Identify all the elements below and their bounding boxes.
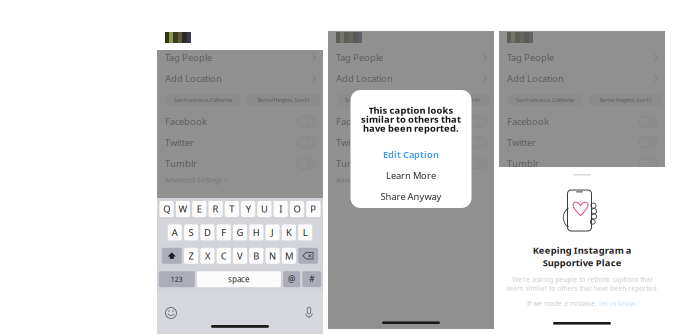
button[interactable]: Y bbox=[241, 201, 255, 217]
button[interactable]: W bbox=[176, 201, 190, 217]
button[interactable]: @ bbox=[283, 271, 300, 287]
button[interactable]: Emoji bbox=[165, 307, 177, 319]
staticText: Twitter bbox=[165, 136, 194, 149]
button[interactable]: V bbox=[233, 248, 247, 264]
button[interactable]: R bbox=[208, 201, 223, 217]
button[interactable]: X bbox=[200, 248, 214, 264]
button[interactable]: B bbox=[249, 248, 263, 264]
staticText: Edit Caption bbox=[383, 148, 439, 161]
staticText: Tumblr bbox=[507, 157, 539, 170]
button[interactable]: Add Location bbox=[499, 68, 665, 89]
button[interactable]: F bbox=[217, 224, 231, 240]
staticText: W bbox=[178, 203, 187, 215]
staticText: G bbox=[236, 226, 243, 239]
button[interactable]: C bbox=[217, 248, 231, 264]
button[interactable]: Facebook bbox=[328, 111, 494, 132]
staticText: Bernal Heights, San Fr bbox=[599, 96, 651, 104]
staticText: Twitter bbox=[507, 136, 536, 149]
staticText: O bbox=[294, 203, 301, 215]
button[interactable]: Tumblr bbox=[157, 153, 323, 174]
staticText: Keeping Instagram a Supportive Place bbox=[532, 244, 631, 269]
button[interactable]: Twitter bbox=[328, 132, 494, 153]
button[interactable]: S bbox=[184, 224, 198, 240]
button[interactable]: Edit Caption bbox=[350, 144, 471, 165]
staticText: B bbox=[253, 250, 259, 262]
staticText: Facebook bbox=[165, 115, 207, 128]
button[interactable]: Add Location bbox=[157, 68, 323, 89]
button[interactable]: Tumblr bbox=[499, 153, 665, 174]
button[interactable]: Z bbox=[184, 248, 198, 264]
staticText: We're asking people to rethink captions … bbox=[506, 275, 658, 293]
button[interactable]: H bbox=[249, 224, 263, 240]
staticText: Add Location bbox=[336, 72, 393, 85]
staticText: San Francisco, California bbox=[345, 96, 403, 104]
button[interactable]: Tag People bbox=[328, 47, 494, 68]
staticText: P bbox=[310, 203, 316, 215]
button[interactable]: O bbox=[290, 201, 304, 217]
button[interactable]: Shift bbox=[162, 248, 182, 264]
staticText: Add Location bbox=[507, 72, 564, 85]
button[interactable]: P bbox=[306, 201, 320, 217]
staticText: J bbox=[271, 226, 274, 239]
button[interactable]: San Francisco, California bbox=[337, 95, 411, 105]
staticText: Z bbox=[189, 250, 194, 262]
button[interactable]: T bbox=[225, 201, 239, 217]
staticText: H bbox=[253, 226, 260, 239]
staticText: L bbox=[303, 226, 308, 239]
staticText: > bbox=[395, 176, 398, 184]
button[interactable]: Share Anyway bbox=[350, 186, 471, 207]
button[interactable]: Tag People bbox=[157, 47, 323, 68]
button[interactable]: Tumblr bbox=[328, 153, 494, 174]
button[interactable]: E bbox=[192, 201, 206, 217]
button[interactable]: D bbox=[200, 224, 214, 240]
staticText: 123 bbox=[171, 275, 183, 284]
button[interactable]: San Francisco, California bbox=[166, 95, 240, 105]
button[interactable]: Twitter bbox=[499, 132, 665, 153]
button[interactable]: N bbox=[265, 248, 280, 264]
staticText: T bbox=[229, 203, 234, 215]
staticText: San Francisco, California bbox=[174, 96, 232, 104]
button[interactable]: K bbox=[282, 224, 296, 240]
button[interactable]: Facebook bbox=[499, 111, 665, 132]
button[interactable]: Tag People bbox=[499, 47, 665, 68]
button[interactable]: Twitter bbox=[157, 132, 323, 153]
button[interactable]: L bbox=[298, 224, 312, 240]
button[interactable]: Bernal Heights, San Fr bbox=[589, 95, 662, 105]
staticText: N bbox=[269, 250, 276, 262]
staticText: U bbox=[261, 203, 268, 215]
staticText: Y bbox=[246, 203, 251, 215]
staticText: If we made a mistake, bbox=[527, 299, 597, 308]
button[interactable]: A bbox=[168, 224, 182, 240]
staticText: Bernal Heights, San Fr bbox=[257, 96, 309, 104]
button[interactable]: M bbox=[282, 248, 296, 264]
button[interactable]: Facebook bbox=[157, 111, 323, 132]
button[interactable]: U bbox=[257, 201, 271, 217]
staticText: # bbox=[309, 274, 314, 284]
button[interactable]: Q bbox=[160, 201, 174, 217]
button[interactable]: let us know. bbox=[599, 299, 637, 308]
staticText: Share Anyway bbox=[380, 190, 441, 203]
button[interactable]: Bernal Heights, San Fr bbox=[247, 95, 320, 105]
button[interactable]: space bbox=[197, 271, 281, 287]
staticText: V bbox=[237, 250, 243, 262]
button[interactable]: Bernal Heights, San Fr bbox=[418, 95, 491, 105]
staticText: @ bbox=[288, 274, 295, 284]
button[interactable]: Dictation bbox=[305, 306, 313, 319]
button[interactable]: 123 bbox=[159, 271, 195, 287]
staticText: let us know. bbox=[599, 299, 637, 308]
staticText: Tag People bbox=[507, 51, 554, 64]
staticText: San Francisco, California bbox=[516, 96, 574, 104]
button[interactable]: San Francisco, California bbox=[508, 95, 582, 105]
button[interactable]: J bbox=[266, 224, 280, 240]
button[interactable]: # bbox=[302, 271, 321, 287]
button[interactable]: Learn More bbox=[350, 165, 471, 186]
staticText: Tag People bbox=[165, 51, 212, 64]
button[interactable]: Add Location bbox=[328, 68, 494, 89]
button[interactable]: I bbox=[274, 201, 288, 217]
button[interactable]: G bbox=[233, 224, 247, 240]
staticText: have been reported. bbox=[363, 122, 459, 134]
staticText: Tumblr bbox=[336, 157, 368, 170]
button[interactable]: Delete bbox=[298, 248, 318, 264]
